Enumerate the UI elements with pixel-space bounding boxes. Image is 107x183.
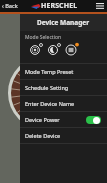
staticText: ‹ Back [2, 2, 18, 10]
staticText: Device Manager [37, 18, 90, 27]
staticText: Device Power [25, 116, 60, 123]
button[interactable]: Enter Device Name [20, 96, 107, 111]
button[interactable]: Night mode [46, 42, 60, 56]
staticText: Mode Selection [25, 34, 62, 41]
staticText: Schedule Setting [25, 84, 69, 91]
button[interactable]: Comfort mode [28, 42, 42, 56]
button[interactable]: Menu [93, 0, 107, 12]
staticText: Mode Temp Preset [25, 68, 74, 75]
button[interactable]: Delete Device [20, 128, 107, 143]
button[interactable]: Schedule mode [64, 42, 78, 56]
staticText: HERSCHEL [41, 1, 78, 11]
staticText: Enter Device Name [25, 100, 75, 107]
staticText: Delete Device [25, 132, 61, 139]
button[interactable]: ‹ Back [0, 0, 20, 12]
button[interactable]: Schedule Setting [20, 80, 107, 95]
button[interactable]: Device Power [20, 112, 107, 127]
button[interactable]: Mode Temp Preset [20, 64, 107, 79]
